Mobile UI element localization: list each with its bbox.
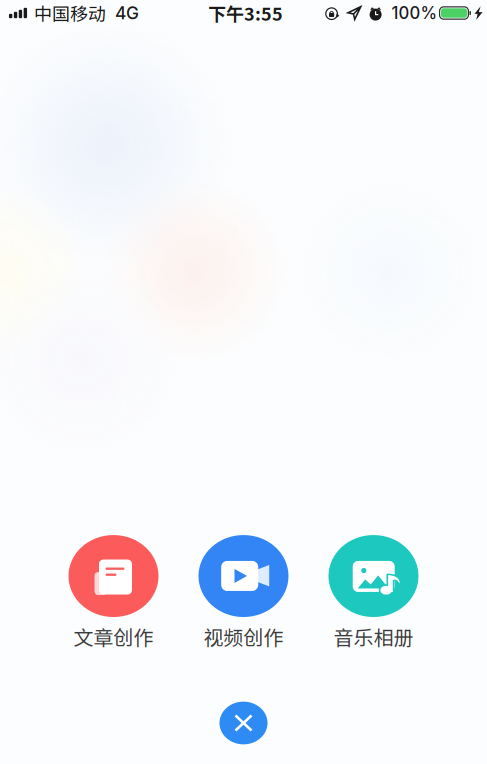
staticText: 下午3:55 [208,0,283,26]
staticText: 100% [392,3,438,23]
staticText: 4G [115,2,139,23]
staticText: 音乐相册 [333,622,413,651]
button[interactable]: 关闭 [213,696,273,750]
button[interactable]: 音乐相册 [317,535,429,651]
staticText: 中国移动 [34,0,106,26]
button[interactable]: 视频创作 [187,535,299,651]
staticText: 视频创作 [203,622,283,651]
button[interactable]: 文章创作 [57,535,169,651]
staticText: 文章创作 [73,622,153,651]
